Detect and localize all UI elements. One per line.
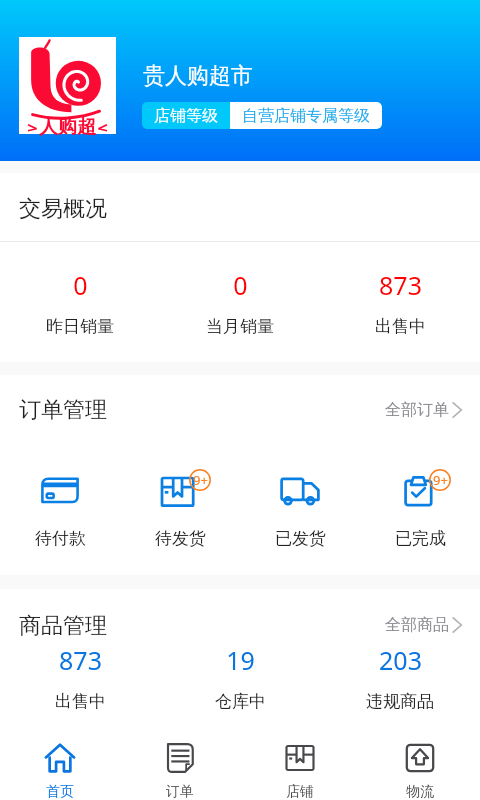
staticText: 待发货	[155, 528, 206, 549]
button[interactable]: 待发货	[120, 467, 240, 567]
staticText: 全部商品	[385, 615, 449, 635]
button[interactable]: 203	[320, 639, 480, 717]
button[interactable]: 0	[160, 242, 320, 362]
staticText: 已完成	[395, 528, 446, 549]
staticText: 19	[226, 643, 255, 677]
staticText: 出售中	[55, 691, 106, 712]
button[interactable]: 店铺	[240, 717, 360, 800]
staticText: 待付款	[35, 528, 86, 549]
button[interactable]: 873	[0, 639, 160, 717]
staticText: 出售中	[375, 316, 426, 337]
staticText: 仓库中	[215, 691, 266, 712]
staticText: 订单	[166, 783, 194, 800]
staticText: 商品管理	[19, 612, 107, 640]
staticText: 9+	[433, 471, 448, 489]
staticText: 首页	[46, 783, 74, 800]
button[interactable]: 物流	[360, 717, 480, 800]
staticText: 昨日销量	[46, 316, 114, 337]
staticText: 当月销量	[206, 316, 274, 337]
button[interactable]: 全部商品	[385, 615, 462, 635]
button[interactable]: 全部订单	[385, 400, 462, 420]
staticText: 873	[379, 268, 422, 302]
button[interactable]: 首页	[0, 717, 120, 800]
staticText: 人购超	[39, 115, 96, 139]
staticText: 贵人购超市	[143, 62, 253, 90]
staticText: 订单管理	[19, 396, 107, 424]
staticText: 0	[73, 268, 88, 302]
button[interactable]: 已发货	[240, 467, 360, 567]
staticText: 自营店铺专属等级	[242, 106, 370, 126]
staticText: 违规商品	[366, 691, 434, 712]
staticText: 0	[233, 268, 248, 302]
button[interactable]: 订单	[120, 717, 240, 800]
button[interactable]: 待付款	[0, 467, 120, 567]
button[interactable]: 0	[0, 242, 160, 362]
staticText: 交易概况	[19, 195, 107, 223]
staticText: 9+	[193, 471, 208, 489]
button[interactable]: 已完成	[360, 467, 480, 567]
staticText: 物流	[406, 783, 434, 800]
staticText: 203	[379, 643, 422, 677]
button[interactable]: 873	[320, 242, 480, 362]
button[interactable]: 店铺等级	[142, 102, 382, 129]
staticText: 已发货	[275, 528, 326, 549]
staticText: 873	[59, 643, 102, 677]
staticText: 店铺等级	[154, 106, 218, 126]
button[interactable]: 19	[160, 639, 320, 717]
staticText: 全部订单	[385, 400, 449, 420]
staticText: 店铺	[286, 783, 314, 800]
